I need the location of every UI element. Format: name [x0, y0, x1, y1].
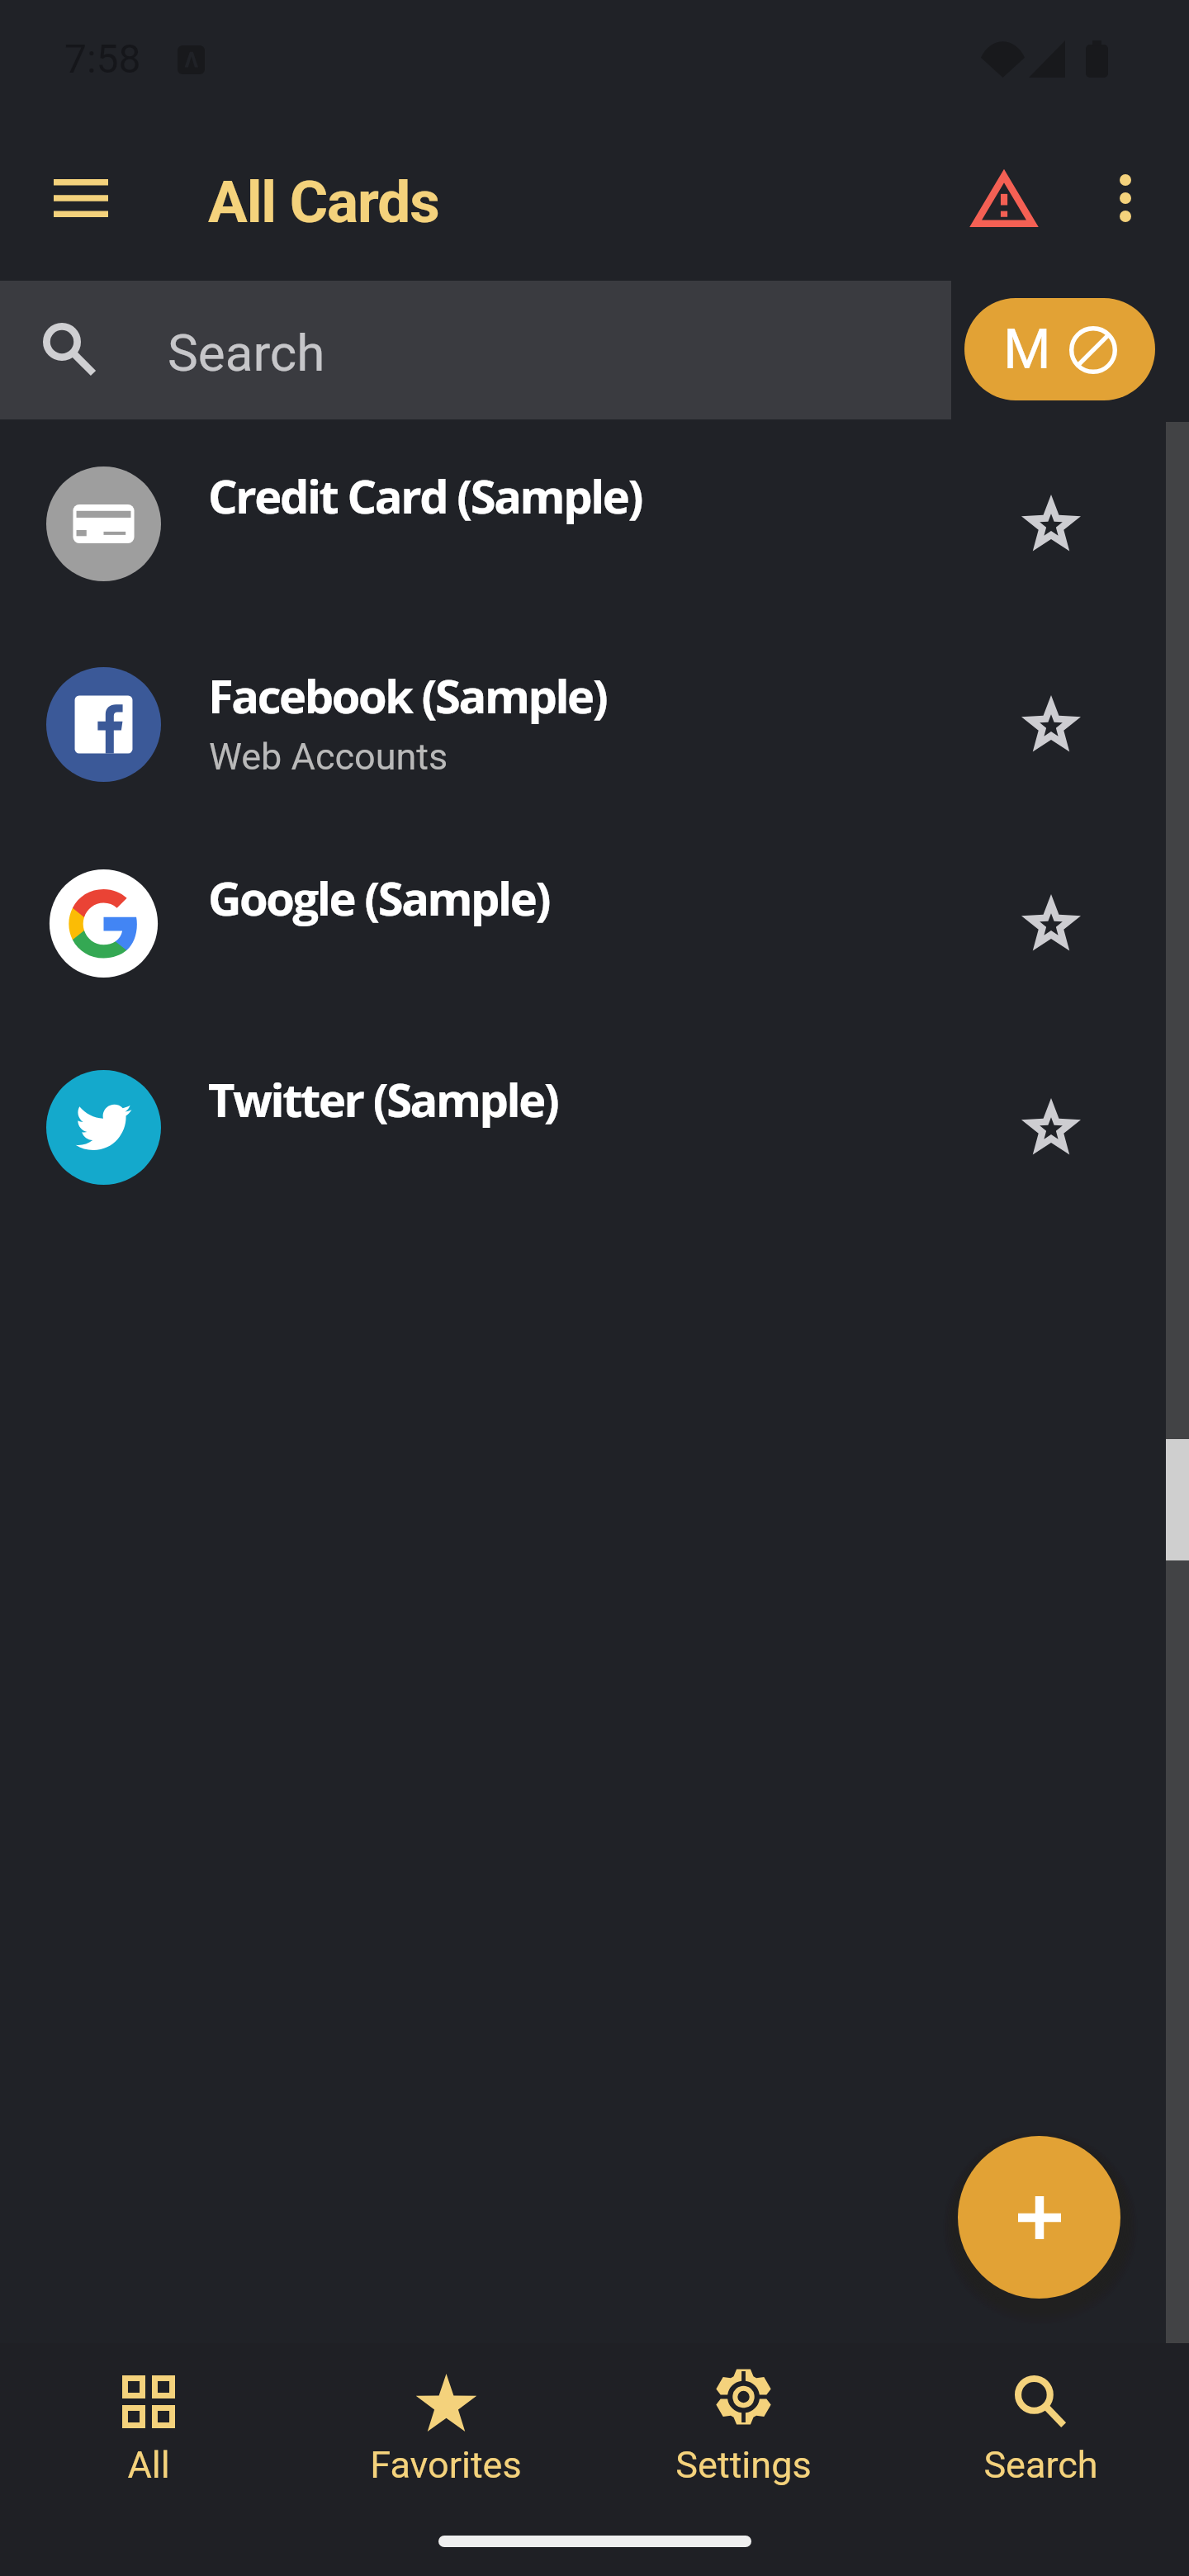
button[interactable]: Settings: [594, 2343, 892, 2508]
button[interactable]: All: [0, 2343, 297, 2508]
staticText: Facebook (Sample): [208, 664, 607, 727]
button[interactable]: Toggle favorite: [1021, 1097, 1081, 1157]
staticText: Settings: [675, 2443, 812, 2487]
button[interactable]: Facebook (Sample): [0, 624, 1189, 824]
button[interactable]: Toggle favorite: [1021, 694, 1081, 754]
button[interactable]: Add card: [958, 2136, 1120, 2299]
button[interactable]: More options: [1080, 153, 1171, 244]
staticText: 7:58: [64, 36, 141, 82]
button[interactable]: Toggle favorite: [1021, 494, 1081, 553]
staticText: Google (Sample): [208, 866, 549, 929]
button[interactable]: Search field: [0, 281, 951, 419]
button[interactable]: Search: [892, 2343, 1189, 2508]
button[interactable]: Security warning: [958, 153, 1050, 244]
staticText: Twitter (Sample): [208, 1068, 558, 1130]
staticText: All Cards: [208, 168, 439, 236]
staticText: Search: [168, 323, 325, 383]
button[interactable]: Open navigation menu: [17, 153, 145, 244]
staticText: Credit Card (Sample): [208, 464, 642, 527]
staticText: Web Accounts: [209, 735, 448, 779]
staticText: M: [1003, 318, 1051, 381]
button[interactable]: Master password locked: [964, 298, 1155, 400]
staticText: All: [127, 2443, 170, 2487]
button[interactable]: Toggle favorite: [1021, 893, 1081, 953]
staticText: Favorites: [370, 2443, 522, 2487]
button[interactable]: Favorites: [297, 2343, 594, 2508]
button[interactable]: Google (Sample): [0, 823, 1189, 1023]
button[interactable]: Twitter (Sample): [0, 1027, 1189, 1227]
button[interactable]: Credit Card (Sample): [0, 424, 1189, 623]
staticText: Search: [983, 2443, 1098, 2487]
